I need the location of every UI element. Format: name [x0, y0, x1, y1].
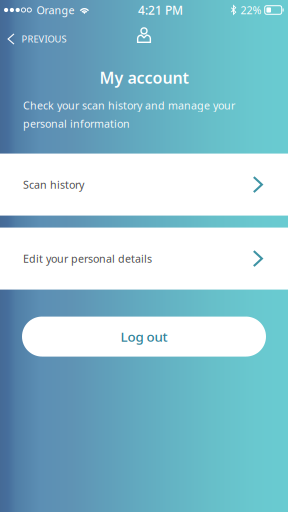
staticText: Log out	[120, 328, 167, 345]
button[interactable]: Account	[132, 22, 156, 48]
staticText: Orange	[36, 3, 74, 17]
staticText: PREVIOUS	[21, 33, 66, 45]
button[interactable]: Scan history	[0, 154, 288, 216]
staticText: My account	[99, 67, 188, 88]
button[interactable]: Log out	[22, 317, 266, 357]
staticText: Check your scan history and manage your	[23, 98, 235, 112]
staticText: Scan history	[23, 177, 84, 192]
staticText: 22%	[240, 3, 261, 17]
staticText: 4:21 PM	[138, 2, 183, 18]
staticText: Edit your personal details	[23, 251, 152, 266]
button[interactable]: PREVIOUS	[0, 27, 73, 51]
button[interactable]: Edit your personal details	[0, 228, 288, 290]
staticText: personal information	[23, 116, 130, 131]
